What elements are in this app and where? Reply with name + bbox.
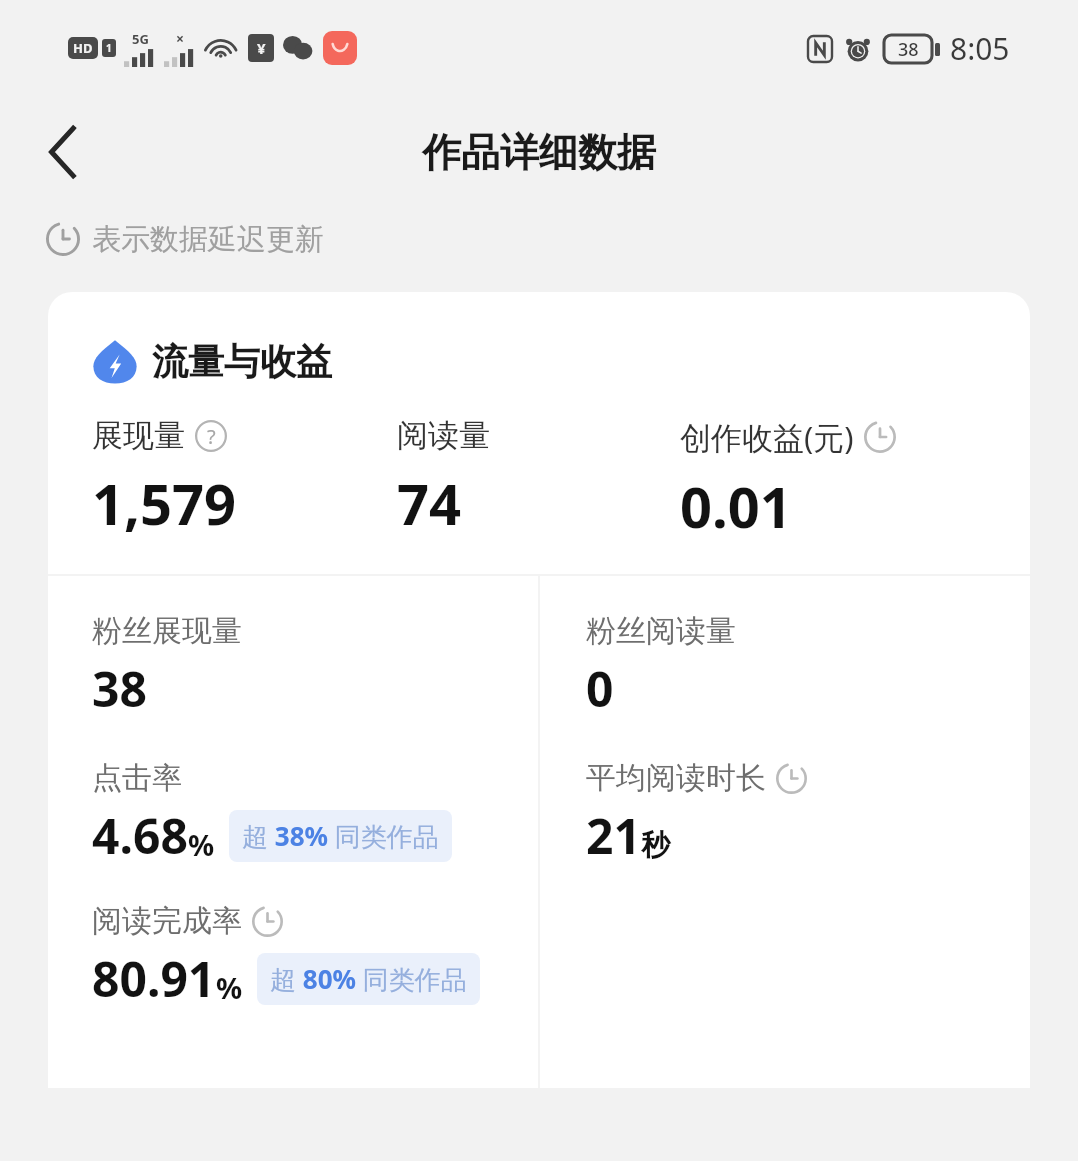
staticText: 展现量 — [92, 416, 185, 455]
staticText: 80.91 — [92, 946, 216, 1011]
staticText: 38 — [92, 656, 147, 721]
staticText: 阅读完成率 — [92, 902, 242, 940]
button[interactable]: 平均阅读时长 — [586, 759, 807, 868]
button[interactable]: 展现量 — [92, 416, 397, 541]
staticText: 秒 — [641, 827, 670, 864]
button[interactable]: 阅读量 — [397, 416, 680, 541]
button[interactable]: 阅读完成率 — [92, 902, 480, 1011]
staticText: 平均阅读时长 — [586, 759, 766, 797]
staticText: ¥ — [257, 38, 266, 58]
staticText: 0.01 — [680, 468, 792, 544]
staticText: 阅读量 — [397, 416, 490, 455]
button[interactable]: 粉丝阅读量 — [586, 612, 736, 721]
staticText: 粉丝展现量 — [92, 612, 242, 650]
staticText: HD — [73, 39, 93, 57]
staticText: 超 38% 同类作品 — [242, 818, 439, 854]
staticText: 粉丝阅读量 — [586, 612, 736, 650]
button[interactable]: 超 80% 同类作品 — [257, 953, 480, 1005]
staticText: 创作收益(元) — [680, 416, 854, 458]
staticText: 1 — [106, 41, 112, 55]
staticText: 1,579 — [92, 465, 237, 541]
staticText: 74 — [397, 465, 462, 541]
staticText: 38 — [898, 37, 919, 62]
staticText: 作品详细数据 — [422, 128, 656, 177]
staticText: 点击率 — [92, 759, 182, 797]
button[interactable]: 点击率 — [92, 759, 452, 868]
button[interactable]: 流量与收益 — [92, 338, 332, 384]
staticText: 表示数据延迟更新 — [92, 221, 324, 258]
staticText: ? — [207, 423, 216, 450]
button[interactable]: 创作收益(元) — [680, 416, 1006, 544]
staticText: 4.68 — [92, 803, 188, 868]
staticText: % — [216, 968, 243, 1007]
button[interactable]: Back — [20, 109, 106, 195]
button[interactable]: 粉丝展现量 — [92, 612, 242, 721]
staticText: 流量与收益 — [152, 339, 332, 384]
staticText: 超 80% 同类作品 — [270, 961, 467, 997]
staticText: 21 — [586, 803, 641, 868]
staticText: 5G — [132, 30, 149, 48]
staticText: % — [188, 825, 215, 864]
staticText: 8:05 — [950, 28, 1010, 69]
staticText: 0 — [586, 656, 614, 721]
staticText: × — [176, 29, 185, 48]
button[interactable]: 超 38% 同类作品 — [229, 810, 452, 862]
